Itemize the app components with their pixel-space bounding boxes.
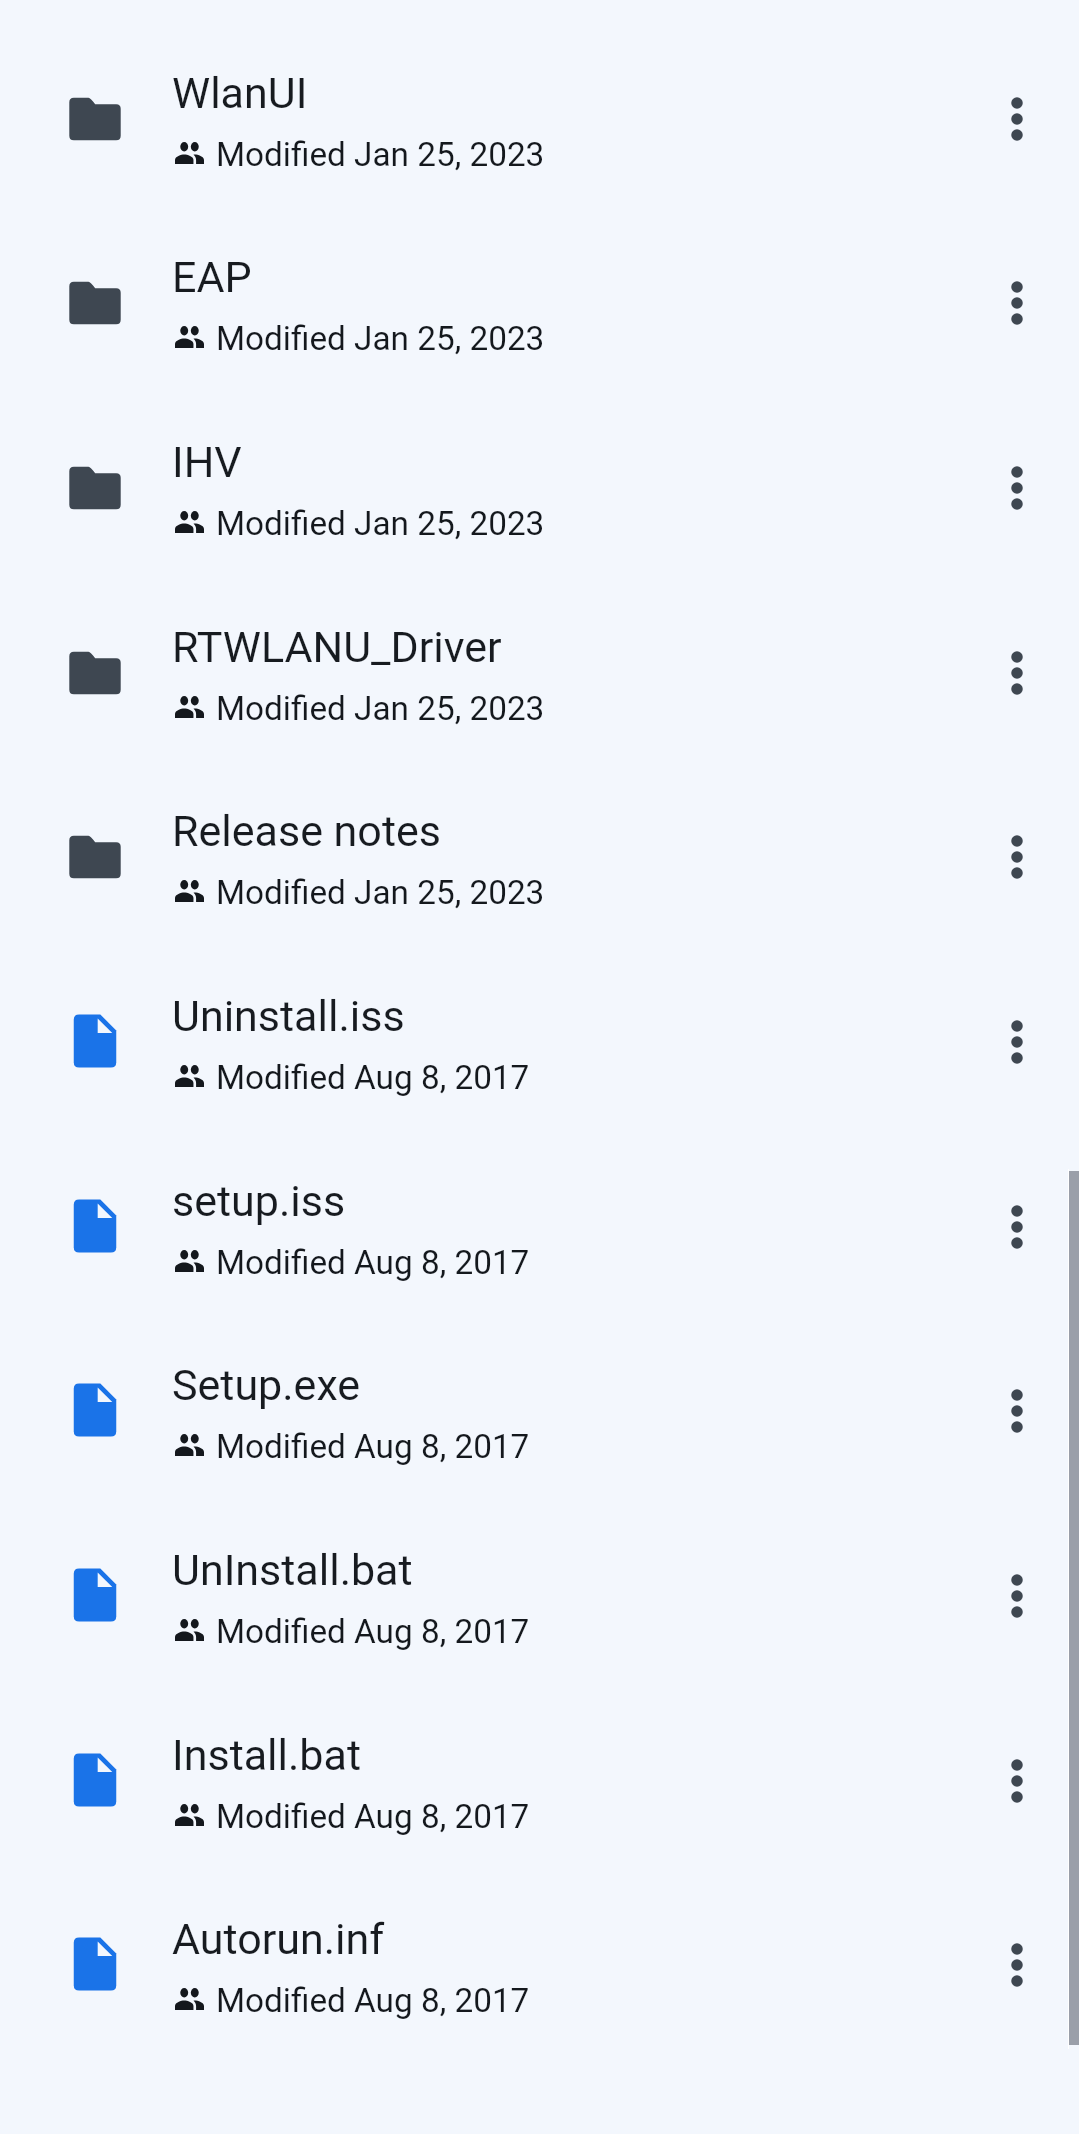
button[interactable]: More options <box>955 1503 1079 1688</box>
button[interactable]: Uninstall.iss <box>0 949 1079 1134</box>
staticText: Autorun.inf <box>172 1914 385 1964</box>
staticText: Modified Jan 25, 2023 <box>216 319 545 358</box>
staticText: Uninstall.iss <box>172 991 405 1041</box>
button[interactable]: More options <box>955 580 1079 765</box>
button[interactable]: UnInstall.bat <box>0 1503 1079 1688</box>
button[interactable]: Release notes <box>0 764 1079 949</box>
staticText: Modified Aug 8, 2017 <box>216 1427 530 1466</box>
staticText: Modified Aug 8, 2017 <box>216 1243 530 1282</box>
button[interactable]: More options <box>955 26 1079 211</box>
button[interactable]: More options <box>955 764 1079 949</box>
button[interactable]: EAP <box>0 210 1079 395</box>
button[interactable]: IHV <box>0 395 1079 580</box>
staticText: setup.iss <box>172 1176 346 1226</box>
staticText: WlanUI <box>172 68 308 118</box>
button[interactable]: More options <box>955 1134 1079 1319</box>
staticText: EAP <box>172 252 252 302</box>
staticText: Modified Jan 25, 2023 <box>216 504 545 543</box>
staticText: Modified Jan 25, 2023 <box>216 873 545 912</box>
button[interactable]: WlanUI <box>0 26 1079 211</box>
button[interactable]: RTWLANU_Driver <box>0 580 1079 765</box>
button[interactable]: More options <box>955 949 1079 1134</box>
staticText: Modified Aug 8, 2017 <box>216 1058 530 1097</box>
button[interactable]: Autorun.inf <box>0 1872 1079 2057</box>
staticText: Modified Aug 8, 2017 <box>216 1797 530 1836</box>
button[interactable]: More options <box>955 1318 1079 1503</box>
button[interactable]: More options <box>955 1872 1079 2057</box>
button[interactable]: Install.bat <box>0 1688 1079 1873</box>
staticText: Modified Aug 8, 2017 <box>216 1612 530 1651</box>
button[interactable]: More options <box>955 210 1079 395</box>
button[interactable]: setup.iss <box>0 1134 1079 1319</box>
staticText: Modified Jan 25, 2023 <box>216 135 545 174</box>
staticText: IHV <box>172 437 242 487</box>
staticText: Setup.exe <box>172 1360 361 1410</box>
staticText: Install.bat <box>172 1730 361 1780</box>
staticText: Modified Jan 25, 2023 <box>216 689 545 728</box>
staticText: Modified Aug 8, 2017 <box>216 1981 530 2020</box>
button[interactable]: More options <box>955 395 1079 580</box>
button[interactable]: Setup.exe <box>0 1318 1079 1503</box>
button[interactable]: More options <box>955 1688 1079 1873</box>
staticText: UnInstall.bat <box>172 1545 413 1595</box>
staticText: Release notes <box>172 806 441 856</box>
staticText: RTWLANU_Driver <box>172 622 502 672</box>
